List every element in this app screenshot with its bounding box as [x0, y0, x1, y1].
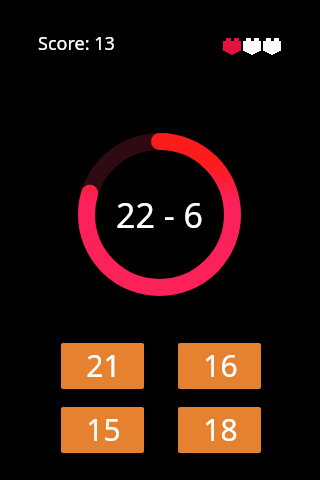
staticText: 22 - 6 — [116, 192, 203, 238]
button[interactable]: 15 — [61, 407, 144, 453]
button[interactable]: 21 — [61, 343, 144, 389]
staticText: Score: 13 — [38, 31, 115, 56]
staticText: 16 — [203, 345, 238, 386]
button[interactable]: 18 — [178, 407, 261, 453]
other: Life — [263, 38, 281, 55]
staticText: 18 — [203, 409, 238, 450]
staticText: 21 — [86, 345, 121, 386]
button[interactable]: 16 — [178, 343, 261, 389]
staticText: 15 — [86, 409, 121, 450]
other: Life — [243, 38, 261, 55]
other: Life — [223, 38, 241, 55]
